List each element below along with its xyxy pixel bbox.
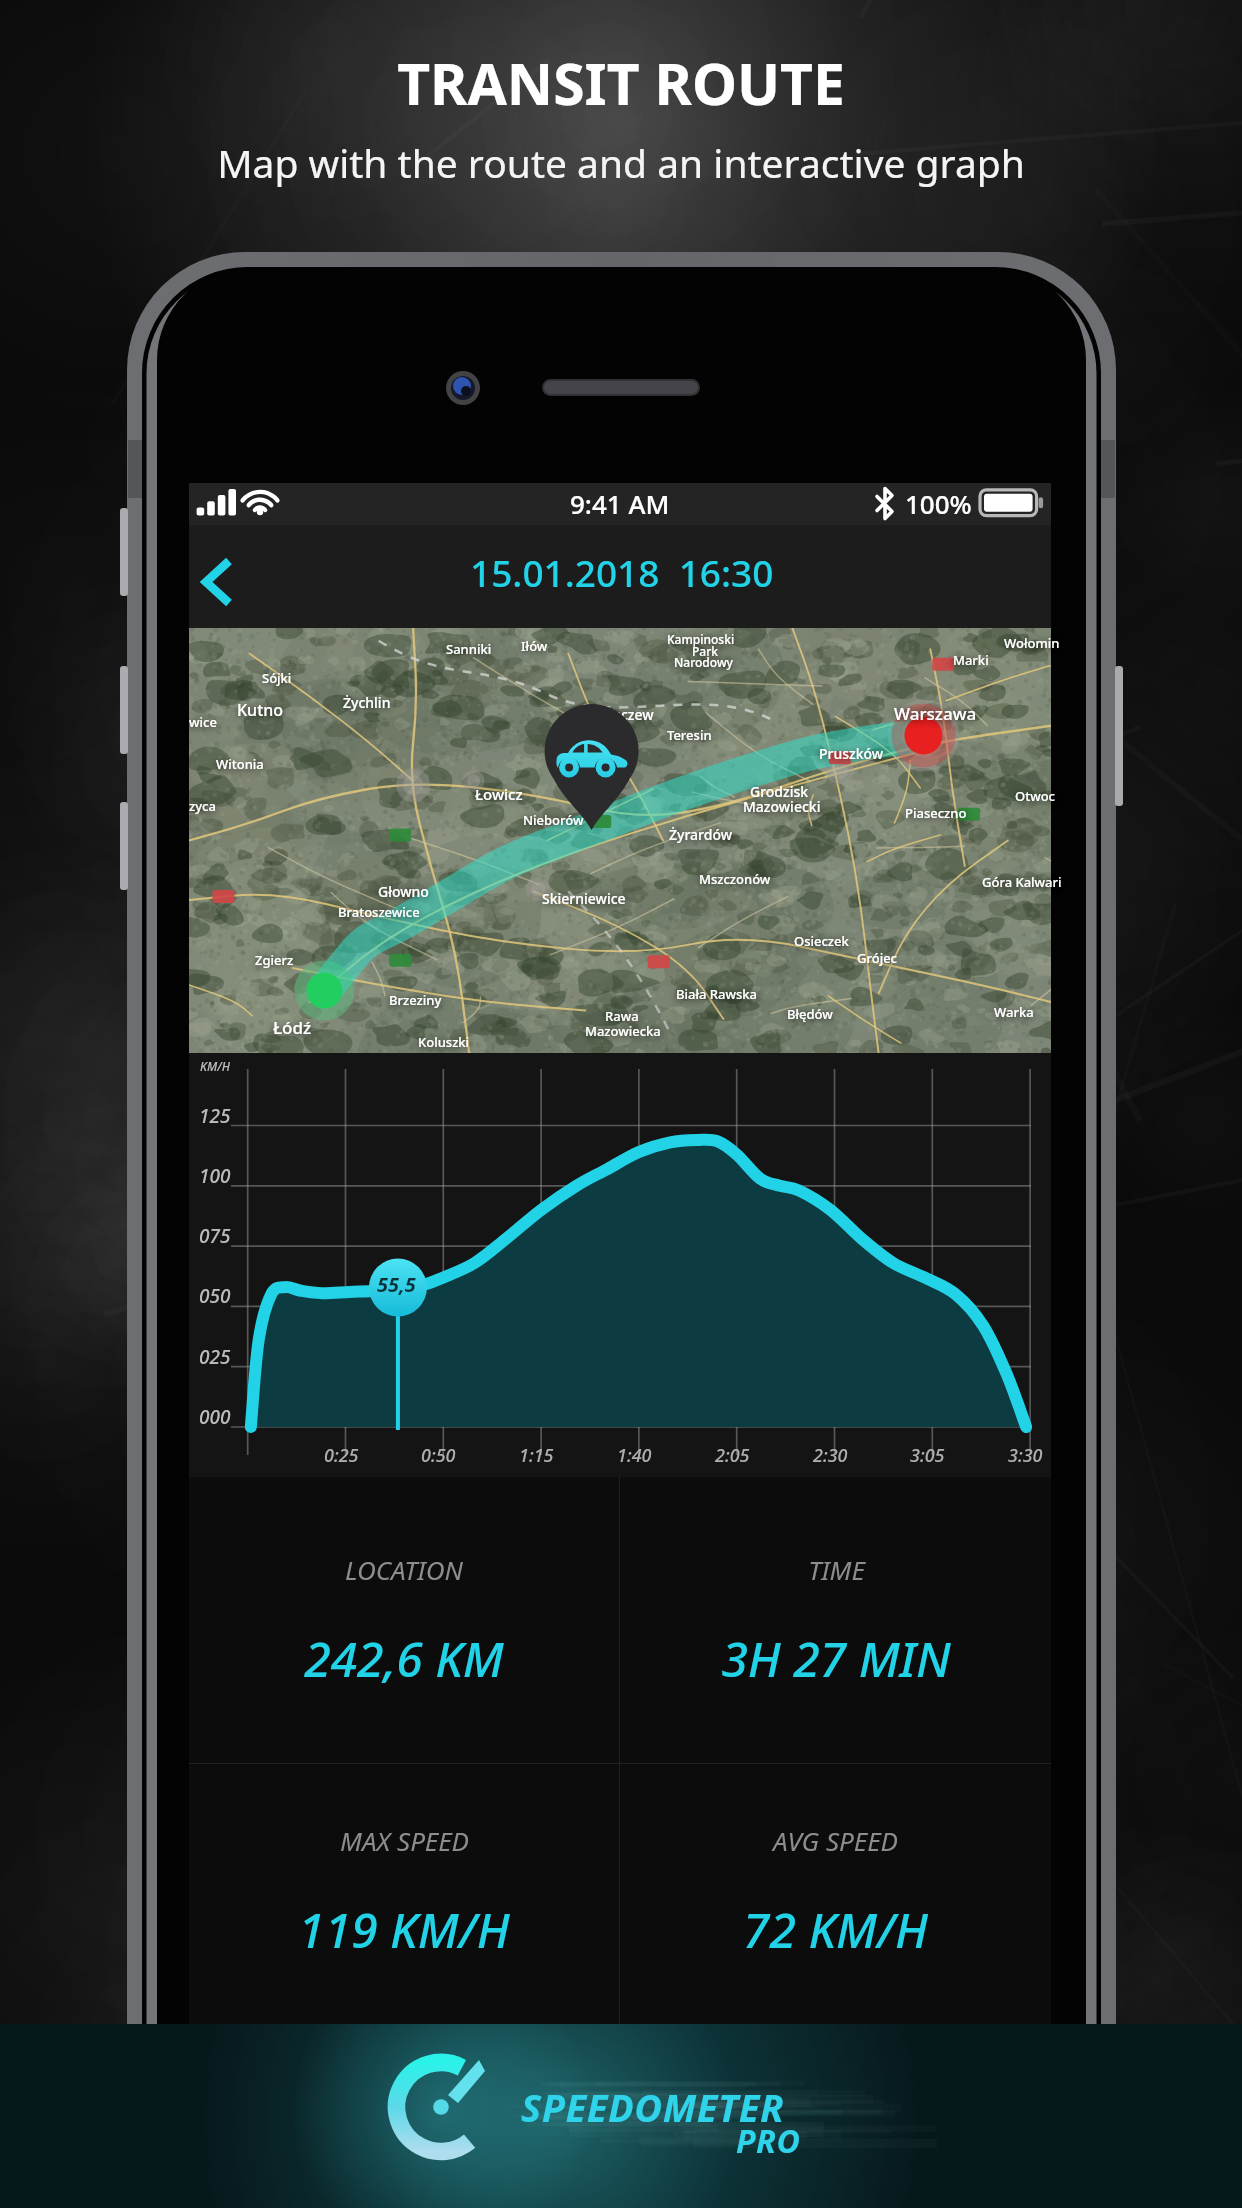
staticText: Piaseczno xyxy=(905,804,967,822)
staticText: Łowicz xyxy=(475,784,523,804)
staticText: Iłów xyxy=(521,637,548,655)
staticText: 72 KM/H xyxy=(743,1897,928,1962)
staticText: PRO xyxy=(736,2119,801,2163)
staticText: 3:05 xyxy=(910,1443,945,1468)
staticText: Osieczek xyxy=(794,932,849,950)
staticText: Otwoc xyxy=(1015,787,1055,805)
button[interactable]: AVG SPEED xyxy=(620,1764,1051,1962)
staticText: 3H 27 MIN xyxy=(721,1626,951,1691)
staticText: Zgierz xyxy=(255,951,294,969)
staticText: 050 xyxy=(199,1283,231,1309)
staticText: 3:30 xyxy=(1008,1443,1043,1468)
staticText: Map with the route and an interactive gr… xyxy=(217,136,1025,189)
staticText: Bratoszewice xyxy=(338,903,420,921)
staticText: MAX SPEED xyxy=(340,1823,469,1858)
staticText: Sójki xyxy=(262,669,292,687)
staticText: Mazowiecki xyxy=(743,797,821,816)
staticText: 242,6 KM xyxy=(304,1626,504,1691)
staticText: Sanniki xyxy=(446,640,492,658)
staticText: Mazowiecka xyxy=(585,1022,661,1040)
staticText: Warka xyxy=(994,1003,1034,1021)
staticText: Sochaczew xyxy=(581,705,654,724)
staticText: 0:50 xyxy=(421,1443,456,1468)
staticText: Góra Kalwari xyxy=(982,873,1062,891)
staticText: AVG SPEED xyxy=(773,1823,898,1858)
staticText: Wołomin xyxy=(1004,634,1060,652)
staticText: Teresin xyxy=(667,726,712,744)
button[interactable]: Back xyxy=(189,525,285,628)
staticText: 025 xyxy=(199,1344,231,1370)
staticText: Kutno xyxy=(237,699,284,721)
staticText: 15.01.2018 16:30 xyxy=(470,547,774,597)
staticText: TRANSIT ROUTE xyxy=(397,44,845,122)
staticText: Warszawa xyxy=(894,702,977,725)
staticText: 2:30 xyxy=(813,1443,848,1468)
staticText: 9:41 AM xyxy=(570,486,670,521)
staticText: Łódź xyxy=(273,1016,312,1039)
staticText: wice xyxy=(189,713,217,731)
staticText: Grodzisk xyxy=(750,782,809,801)
button[interactable]: TIME xyxy=(620,1477,1051,1691)
staticText: SPEEDOMETER xyxy=(521,2081,785,2133)
staticText: 125 xyxy=(199,1103,231,1129)
staticText: Żyrardów xyxy=(669,825,732,844)
staticText: Marki xyxy=(953,651,989,669)
button[interactable]: Speed graph xyxy=(189,1053,1051,1477)
staticText: Mszczonów xyxy=(699,870,771,888)
staticText: 0:25 xyxy=(324,1443,359,1468)
staticText: Park xyxy=(692,643,718,659)
staticText: Rawa xyxy=(605,1007,639,1025)
staticText: TIME xyxy=(808,1552,865,1587)
staticText: 2:05 xyxy=(715,1443,750,1468)
staticText: Biała Rawska xyxy=(676,985,757,1003)
staticText: Błędów xyxy=(787,1005,833,1023)
staticText: 119 KM/H xyxy=(298,1897,510,1962)
staticText: 075 xyxy=(199,1223,231,1249)
staticText: LOCATION xyxy=(345,1552,463,1587)
staticText: 1:40 xyxy=(617,1443,652,1468)
staticText: 000 xyxy=(199,1404,231,1430)
staticText: Brzeziny xyxy=(389,991,442,1009)
staticText: Kampinoski xyxy=(667,631,735,647)
staticText: Żychlin xyxy=(343,693,391,712)
staticText: Narodowy xyxy=(674,654,733,670)
staticText: 55,5 xyxy=(377,1271,416,1298)
staticText: 1:15 xyxy=(519,1443,554,1468)
staticText: zyca xyxy=(189,797,216,815)
button[interactable]: MAX SPEED xyxy=(189,1764,619,1962)
staticText: Pruszków xyxy=(819,744,884,763)
staticText: Głowno xyxy=(378,882,429,901)
staticText: Nieborów xyxy=(523,811,584,829)
staticText: Koluszki xyxy=(418,1033,470,1051)
staticText: Skierniewice xyxy=(542,889,626,908)
staticText: 100 xyxy=(199,1163,231,1189)
button[interactable]: Route map xyxy=(189,628,1051,1053)
staticText: 100% xyxy=(905,486,972,521)
button[interactable]: LOCATION xyxy=(189,1477,619,1691)
staticText: Witonia xyxy=(216,755,264,773)
staticText: Grójec xyxy=(857,949,897,967)
staticText: KM/H xyxy=(200,1058,230,1074)
